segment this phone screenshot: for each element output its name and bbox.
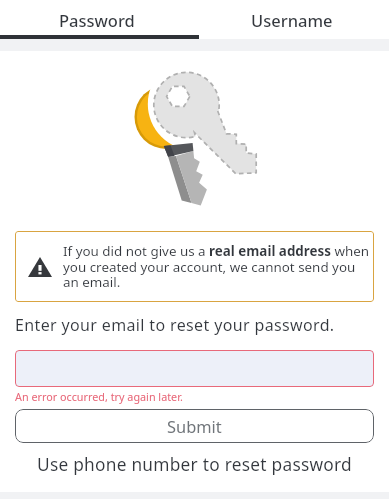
button[interactable] bbox=[15, 350, 374, 387]
staticText: Username bbox=[251, 9, 333, 31]
staticText: An error occurred, try again later. bbox=[15, 389, 183, 404]
button[interactable]: Password bbox=[0, 0, 194, 39]
staticText: Enter your email to reset your password. bbox=[15, 314, 335, 336]
button[interactable]: Use phone number to reset password bbox=[0, 453, 389, 477]
staticText: Password bbox=[59, 9, 135, 31]
staticText: Use phone number to reset password bbox=[37, 453, 352, 477]
button[interactable]: Username bbox=[194, 0, 389, 39]
staticText: Submit bbox=[167, 415, 222, 437]
staticText: If you did not give us a real email addr… bbox=[63, 242, 372, 291]
button[interactable]: Submit bbox=[15, 409, 374, 443]
